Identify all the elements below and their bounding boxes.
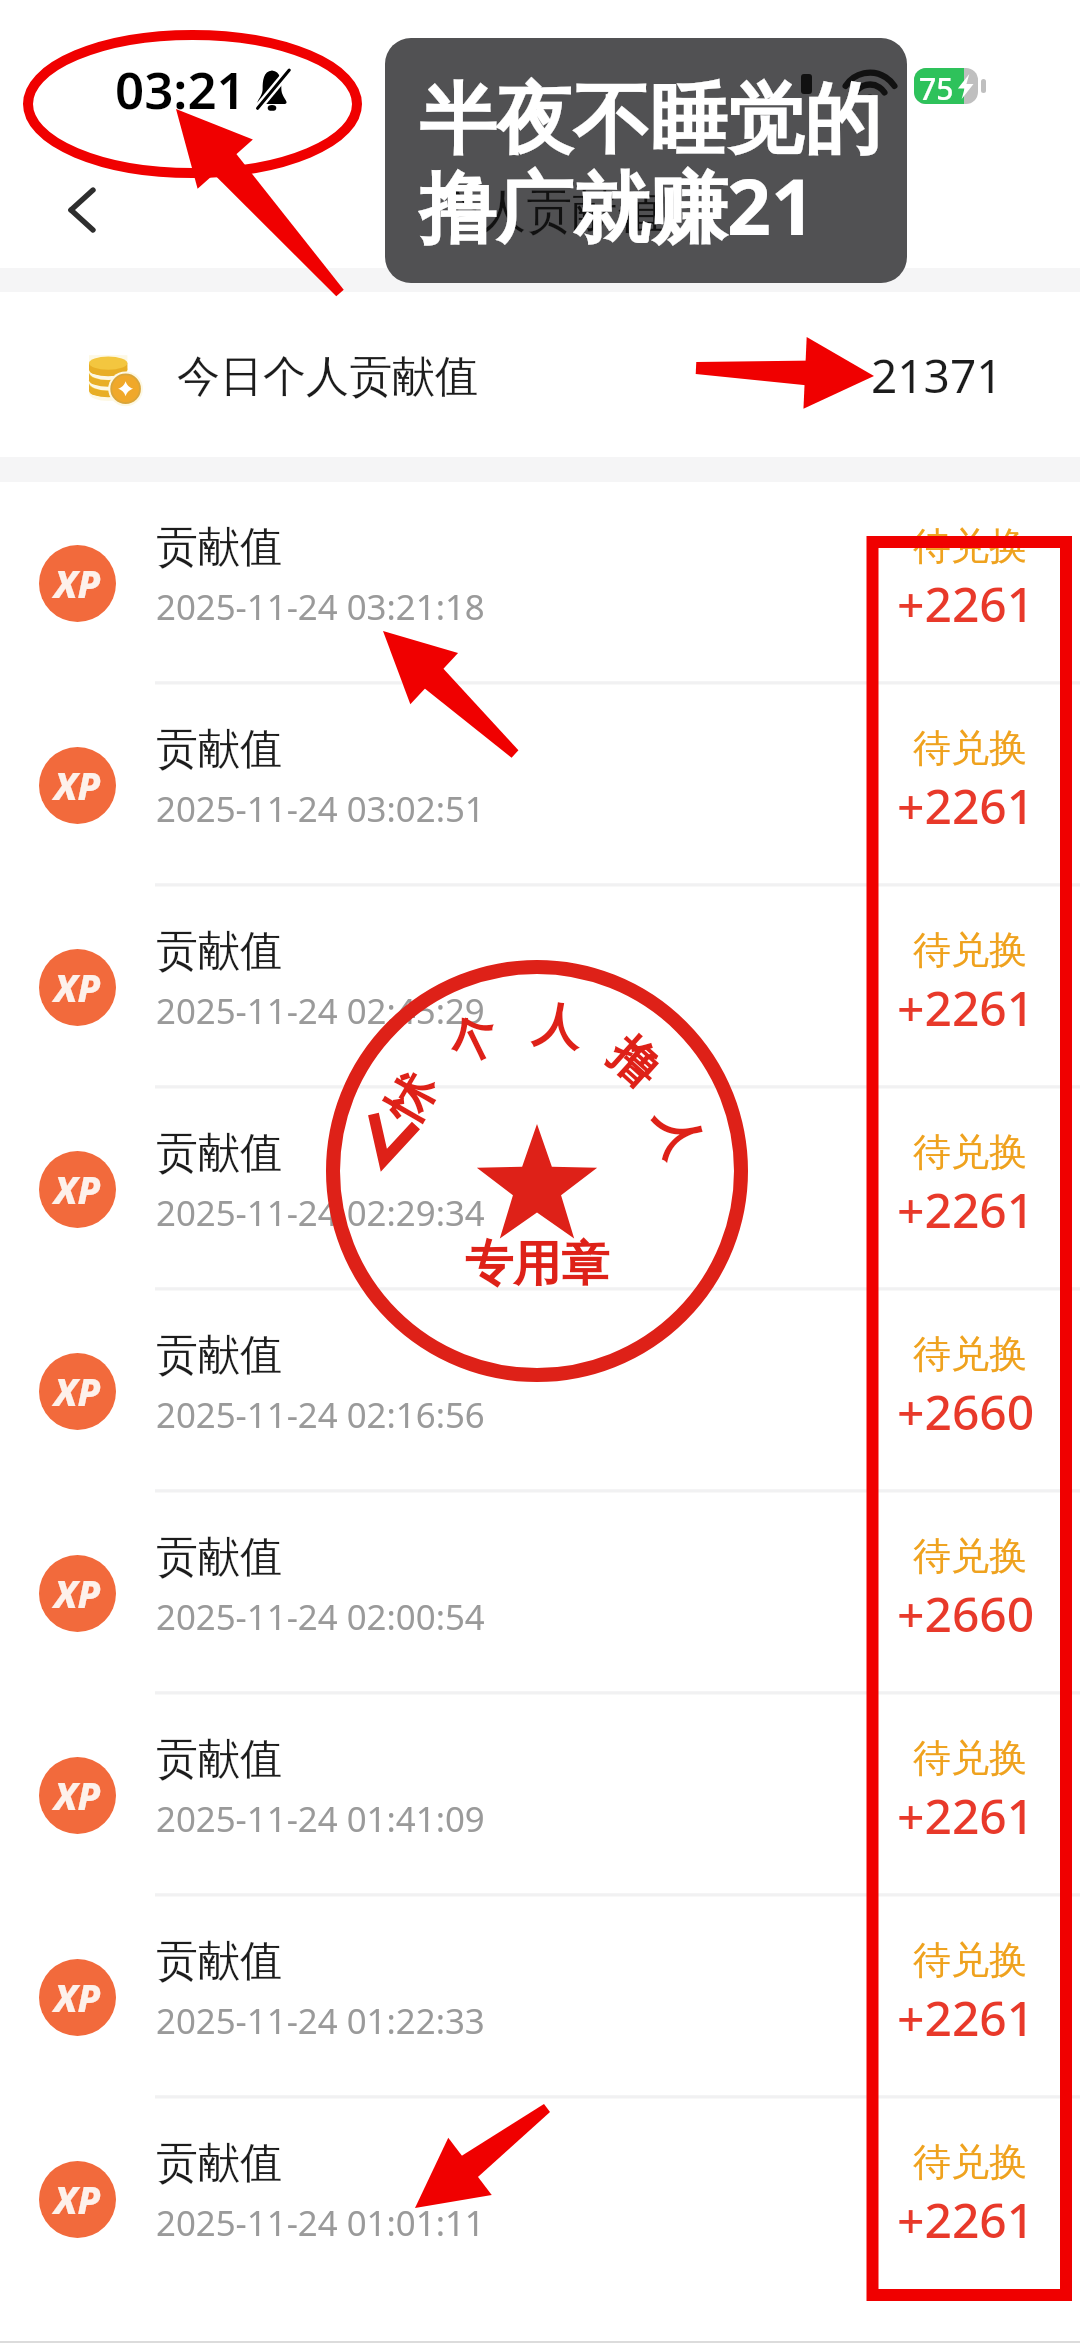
staticText: 待兑换: [913, 1128, 1027, 1176]
staticText: 75: [919, 68, 954, 104]
button[interactable]: 今日个人贡献值: [0, 292, 1080, 457]
staticText: +2261: [897, 1783, 1035, 1848]
staticText: 2025-11-24 03:21:18: [156, 583, 485, 630]
staticText: 待兑换: [913, 1532, 1027, 1580]
button[interactable]: Back: [35, 166, 129, 260]
staticText: 待兑换: [913, 926, 1027, 974]
staticText: +2660: [897, 1379, 1035, 1444]
staticText: 个人贡献值: [434, 183, 664, 241]
staticText: 贡献值: [156, 723, 282, 776]
staticText: 03:21: [115, 54, 246, 123]
staticText: 待兑换: [913, 724, 1027, 772]
staticText: 贡献值: [156, 1127, 282, 1180]
button[interactable]: XP: [0, 1896, 1080, 2098]
staticText: XP: [54, 558, 101, 608]
staticText: 2025-11-24 02:16:56: [156, 1391, 485, 1438]
staticText: XP: [54, 2174, 101, 2224]
staticText: 贡献值: [156, 521, 282, 574]
staticText: XP: [54, 1366, 101, 1416]
staticText: 2025-11-24 03:02:51: [156, 785, 485, 832]
staticText: 2025-11-24 02:29:34: [156, 1189, 485, 1236]
staticText: 待兑换: [913, 522, 1027, 570]
staticText: +2261: [897, 773, 1035, 838]
staticText: XP: [54, 1164, 101, 1214]
staticText: 今日个人贡献值: [177, 350, 478, 404]
staticText: 待兑换: [913, 2138, 1027, 2186]
button[interactable]: XP: [0, 886, 1080, 1088]
staticText: 贡献值: [156, 2137, 282, 2190]
staticText: +2261: [897, 2187, 1035, 2252]
staticText: +2261: [897, 1985, 1035, 2050]
staticText: 2025-11-24 01:41:09: [156, 1795, 485, 1842]
staticText: XP: [54, 1972, 101, 2022]
button[interactable]: XP: [0, 1694, 1080, 1896]
staticText: +2660: [897, 1581, 1035, 1646]
staticText: 贡献值: [156, 1329, 282, 1382]
staticText: 2025-11-24 01:01:11: [156, 2199, 485, 2246]
staticText: 2025-11-24 02:45:29: [156, 987, 485, 1034]
button[interactable]: XP: [0, 684, 1080, 886]
button[interactable]: XP: [0, 1492, 1080, 1694]
staticText: +2261: [897, 571, 1035, 636]
staticText: 待兑换: [913, 1330, 1027, 1378]
staticText: XP: [54, 760, 101, 810]
staticText: 贡献值: [156, 1733, 282, 1786]
staticText: 2025-11-24 01:22:33: [156, 1997, 485, 2044]
staticText: 贡献值: [156, 1531, 282, 1584]
staticText: 待兑换: [913, 1734, 1027, 1782]
staticText: 贡献值: [156, 925, 282, 978]
staticText: XP: [54, 962, 101, 1012]
staticText: +2261: [897, 1177, 1035, 1242]
button[interactable]: XP: [0, 2098, 1080, 2300]
staticText: XP: [54, 1568, 101, 1618]
staticText: XP: [54, 1770, 101, 1820]
staticText: +2261: [897, 975, 1035, 1040]
staticText: 待兑换: [913, 1936, 1027, 1984]
button[interactable]: XP: [0, 1088, 1080, 1290]
staticText: 半夜不睡觉的 撸广就赚21: [419, 72, 881, 258]
staticText: 2025-11-24 02:00:54: [156, 1593, 485, 1640]
staticText: 21371: [871, 344, 1003, 407]
staticText: 贡献值: [156, 1935, 282, 1988]
button[interactable]: XP: [0, 482, 1080, 684]
button[interactable]: XP: [0, 1290, 1080, 1492]
